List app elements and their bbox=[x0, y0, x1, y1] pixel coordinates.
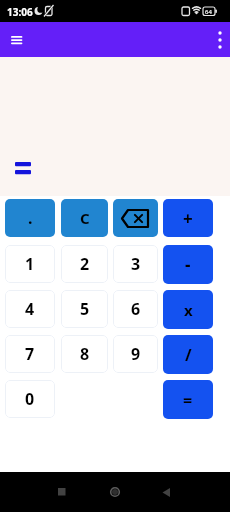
staticText: 64 bbox=[205, 8, 212, 16]
staticText: . bbox=[28, 207, 33, 229]
staticText: / bbox=[185, 344, 192, 366]
staticText: 8 bbox=[80, 343, 90, 365]
staticText: = bbox=[183, 389, 193, 411]
button[interactable]: 7 bbox=[5, 335, 55, 373]
button[interactable]: / bbox=[163, 335, 213, 374]
staticText: 0 bbox=[25, 388, 35, 410]
button[interactable]: C bbox=[61, 199, 108, 237]
button[interactable]: 4 bbox=[5, 290, 55, 328]
button[interactable]: + bbox=[163, 199, 213, 237]
button[interactable]: = bbox=[163, 380, 213, 419]
staticText: 13:06 bbox=[7, 5, 33, 19]
button[interactable]: - bbox=[163, 245, 213, 284]
staticText: 9 bbox=[131, 343, 141, 365]
staticText: 6 bbox=[131, 298, 141, 320]
staticText: - bbox=[185, 253, 191, 276]
button[interactable]: 3 bbox=[113, 245, 158, 283]
button[interactable]: . bbox=[5, 199, 55, 237]
button[interactable]: 0 bbox=[5, 380, 55, 418]
button[interactable]: 8 bbox=[61, 335, 108, 373]
staticText: x bbox=[184, 300, 193, 320]
staticText: 2 bbox=[80, 253, 90, 275]
button[interactable]: x bbox=[163, 290, 213, 329]
button[interactable]: 1 bbox=[5, 245, 55, 283]
button[interactable] bbox=[208, 26, 230, 54]
staticText: C bbox=[80, 208, 90, 228]
button[interactable]: 9 bbox=[113, 335, 158, 373]
button[interactable]: 5 bbox=[61, 290, 108, 328]
button[interactable] bbox=[152, 478, 180, 506]
button[interactable] bbox=[101, 478, 129, 506]
button[interactable]: 6 bbox=[113, 290, 158, 328]
staticText: 5 bbox=[80, 298, 90, 320]
button[interactable] bbox=[113, 199, 158, 237]
button[interactable] bbox=[3, 26, 31, 54]
staticText: 3 bbox=[131, 253, 141, 275]
staticText: 7 bbox=[25, 343, 35, 365]
staticText: 1 bbox=[25, 253, 35, 275]
staticText: 4 bbox=[25, 298, 35, 320]
button[interactable]: 2 bbox=[61, 245, 108, 283]
button[interactable] bbox=[48, 478, 76, 506]
staticText: + bbox=[183, 207, 193, 230]
